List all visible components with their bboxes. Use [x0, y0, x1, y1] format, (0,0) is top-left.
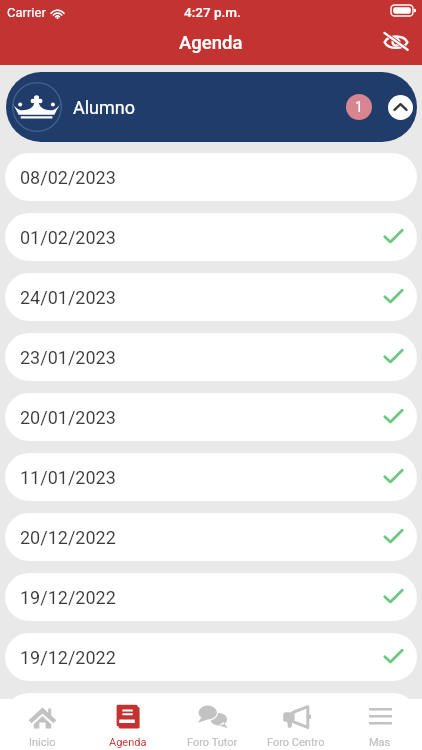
staticText: 24/01/2023 — [20, 287, 116, 308]
button[interactable]: 23/01/2023 — [5, 333, 417, 381]
staticText: 23/01/2023 — [20, 347, 116, 368]
button[interactable]: 20/01/2023 — [5, 393, 417, 441]
button[interactable]: Foro Centro — [254, 699, 338, 750]
staticText: 20/12/2022 — [20, 527, 116, 548]
staticText: 19/12/2022 — [20, 647, 116, 668]
button[interactable]: Ocultar — [377, 25, 415, 63]
button[interactable]: Alumno — [6, 72, 417, 142]
button[interactable]: Inicio — [0, 699, 85, 750]
staticText: Foro Centro — [267, 736, 325, 749]
staticText: 1 — [355, 99, 363, 115]
button[interactable]: 01/02/2023 — [5, 213, 417, 261]
staticText: 4:27 p.m. — [184, 4, 241, 20]
button[interactable]: Contraer — [388, 95, 413, 120]
staticText: 20/01/2023 — [20, 407, 116, 428]
staticText: Alumno — [73, 97, 136, 118]
staticText: Carrier — [7, 5, 46, 20]
staticText: Agenda — [109, 736, 147, 749]
button[interactable]: 10/12/2022 — [5, 693, 417, 741]
button[interactable]: 19/12/2022 — [5, 633, 417, 681]
button[interactable]: 20/12/2022 — [5, 513, 417, 561]
button[interactable]: Mas — [338, 699, 422, 750]
button[interactable]: 08/02/2023 — [5, 153, 417, 201]
staticText: 08/02/2023 — [20, 167, 116, 188]
staticText: Agenda — [179, 32, 243, 54]
button[interactable]: 19/12/2022 — [5, 573, 417, 621]
button[interactable]: 11/01/2023 — [5, 453, 417, 501]
staticText: Inicio — [29, 736, 56, 749]
staticText: 10/12/2022 — [20, 707, 116, 728]
staticText: 01/02/2023 — [20, 227, 116, 248]
staticText: Foro Tutor — [187, 736, 238, 749]
staticText: 11/01/2023 — [20, 467, 116, 488]
staticText: 19/12/2022 — [20, 587, 116, 608]
button[interactable]: 24/01/2023 — [5, 273, 417, 321]
button[interactable]: Foro Tutor — [170, 699, 254, 750]
button[interactable]: Agenda — [85, 699, 170, 750]
staticText: Mas — [369, 736, 391, 749]
